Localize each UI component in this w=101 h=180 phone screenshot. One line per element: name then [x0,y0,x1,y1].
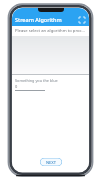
button[interactable] [12,36,89,74]
button[interactable]: NEXT [40,158,62,166]
staticText: Please select an algorithm to proceed by [15,28,86,34]
staticText: NEXT [46,160,57,165]
button[interactable]: Fullscreen [77,15,86,24]
staticText: Stream Algorithm [15,16,77,23]
staticText: Something you the blue [15,78,58,83]
button[interactable]: 0 [15,84,45,91]
staticText: 0 [15,84,18,89]
